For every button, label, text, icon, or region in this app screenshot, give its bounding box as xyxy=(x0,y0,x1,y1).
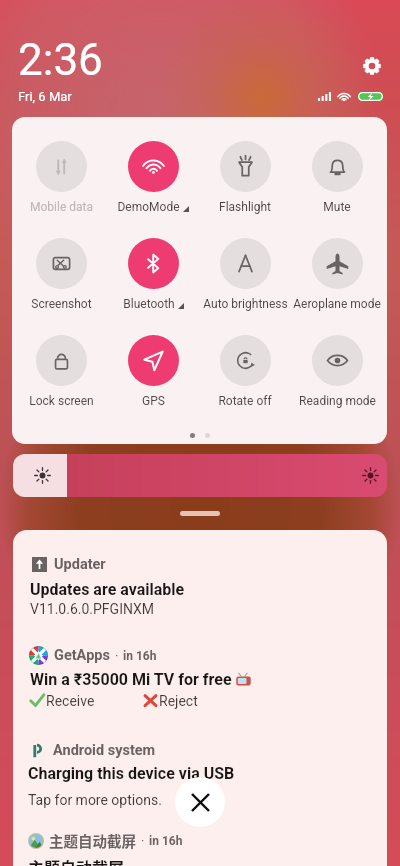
button[interactable]: Screenshot xyxy=(16,238,107,311)
button[interactable] xyxy=(13,454,387,497)
button[interactable]: 主题自动截屏 xyxy=(28,830,183,851)
button[interactable]: Updater xyxy=(32,556,106,573)
staticText: Flashlight xyxy=(219,200,271,214)
staticText: Auto brightness xyxy=(203,297,288,311)
staticText: Android system xyxy=(53,742,156,759)
button[interactable]: Auto brightness xyxy=(199,238,291,311)
button[interactable]: Mobile data xyxy=(16,141,107,214)
staticText: Updates are available xyxy=(30,580,185,599)
button[interactable]: GetApps xyxy=(29,646,157,665)
button[interactable]: Reject xyxy=(142,692,198,709)
button[interactable]: DemoMode xyxy=(107,141,199,214)
staticText: GPS xyxy=(142,394,165,408)
staticText: Reading mode xyxy=(299,394,376,408)
staticText: 主题自动截屏 xyxy=(28,855,125,866)
staticText: · xyxy=(141,833,145,848)
staticText: 主题自动截屏 xyxy=(49,830,136,851)
staticText: Aeroplane mode xyxy=(293,297,381,311)
staticText: Tap for more options. xyxy=(28,792,162,808)
staticText: Rotate off xyxy=(218,394,272,408)
button[interactable]: Flashlight xyxy=(199,141,291,214)
staticText: Mute xyxy=(323,200,351,214)
staticText: Mobile data xyxy=(30,200,93,214)
button[interactable]: Aeroplane mode xyxy=(291,238,383,311)
staticText: Updater xyxy=(54,556,106,573)
button[interactable]: Bluetooth xyxy=(107,238,199,311)
staticText: Reject xyxy=(159,693,198,709)
staticText: V11.0.6.0.PFGINXM xyxy=(30,601,155,617)
button[interactable]: Mute xyxy=(291,141,383,214)
staticText: Bluetooth xyxy=(123,297,175,311)
button[interactable]: Android system xyxy=(31,742,156,759)
staticText: · xyxy=(115,648,119,663)
button[interactable]: Close xyxy=(175,777,225,827)
button[interactable]: Rotate off xyxy=(199,335,291,408)
button[interactable]: Settings xyxy=(358,52,386,80)
staticText: Screenshot xyxy=(31,297,92,311)
staticText: in 16h xyxy=(123,649,157,663)
staticText: Receive xyxy=(46,693,95,709)
staticText: Win a ₹35000 Mi TV for free xyxy=(30,670,232,689)
button[interactable]: Reading mode xyxy=(291,335,383,408)
staticText: Charging this device via USB xyxy=(28,764,235,783)
button[interactable]: Receive xyxy=(29,692,95,709)
button[interactable]: Lock screen xyxy=(16,335,107,408)
staticText: GetApps xyxy=(54,647,110,664)
staticText: Fri, 6 Mar xyxy=(18,89,72,104)
staticText: 2:36 xyxy=(18,34,103,86)
staticText: DemoMode xyxy=(117,200,180,214)
staticText: Lock screen xyxy=(29,394,94,408)
button[interactable]: GPS xyxy=(107,335,199,408)
staticText: in 16h xyxy=(149,834,183,848)
